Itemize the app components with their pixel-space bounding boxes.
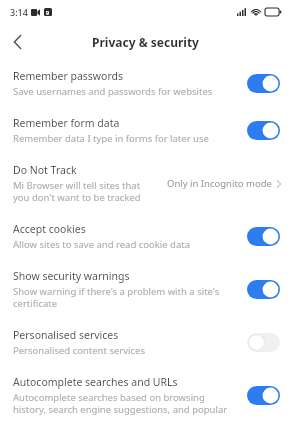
button[interactable]: Remember form data — [0, 107, 290, 154]
staticText: Show security warnings — [13, 269, 130, 283]
staticText: Accept cookies — [13, 222, 86, 236]
button[interactable]: Accept cookies — [0, 213, 290, 260]
staticText: Privacy & security — [92, 34, 199, 50]
staticText: Save usernames and passwords for website… — [13, 85, 213, 98]
staticText: Personalised content services — [13, 344, 145, 357]
button[interactable]: Remember passwords — [0, 60, 290, 107]
staticText: 9 — [46, 9, 50, 16]
button[interactable]: Back — [0, 25, 34, 59]
staticText: Personalised services — [13, 328, 119, 342]
staticText: Remember form data — [13, 116, 120, 130]
button[interactable]: Personalised services — [0, 319, 290, 366]
staticText: Remember passwords — [13, 69, 124, 83]
staticText: Mi Browser will tell sites that you don'… — [13, 179, 153, 204]
staticText: Do Not Track — [13, 163, 77, 177]
button[interactable]: Autocomplete searches and URLs — [0, 366, 290, 425]
button[interactable]: Do Not Track — [0, 154, 290, 213]
staticText: Remember data I type in forms for later … — [13, 132, 209, 145]
staticText: Autocomplete searches based on browsing … — [13, 391, 239, 416]
staticText: Allow sites to save and read cookie data — [13, 238, 191, 251]
staticText: 3:14 — [10, 6, 28, 18]
staticText: Only in Incognito mode — [167, 177, 272, 190]
staticText: Show warning if there's a problem with a… — [13, 285, 239, 310]
staticText: Autocomplete searches and URLs — [13, 375, 178, 389]
button[interactable]: Show security warnings — [0, 260, 290, 319]
